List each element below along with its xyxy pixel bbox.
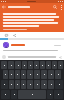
button[interactable]: Period [47, 90, 53, 99]
button[interactable]: More options [58, 3, 64, 11]
button[interactable]: Shift [1, 80, 8, 89]
button[interactable] [46, 61, 51, 69]
button[interactable] [27, 70, 33, 79]
button[interactable]: Backspace [55, 80, 63, 89]
button[interactable] [21, 70, 26, 79]
button[interactable] [27, 80, 33, 89]
button[interactable] [41, 70, 47, 79]
button[interactable] [8, 61, 14, 69]
button[interactable]: Share [11, 32, 17, 38]
button[interactable]: Space [18, 90, 46, 99]
button[interactable] [15, 70, 20, 79]
button[interactable] [15, 61, 21, 69]
button[interactable] [9, 70, 14, 79]
button[interactable]: Comments [3, 32, 9, 38]
other: Your avatar [2, 55, 6, 59]
button[interactable] [41, 80, 47, 89]
button[interactable] [34, 61, 39, 69]
button[interactable] [21, 80, 26, 89]
button[interactable]: Back [0, 3, 8, 11]
button[interactable]: Enter [54, 90, 63, 99]
button[interactable] [15, 80, 20, 89]
button[interactable] [58, 61, 63, 69]
button[interactable]: Your avatar [0, 53, 64, 60]
button[interactable] [34, 80, 40, 89]
button[interactable] [22, 61, 27, 69]
button[interactable]: Send [58, 55, 62, 59]
button[interactable]: Emoji [11, 90, 17, 99]
button[interactable] [28, 61, 33, 69]
button[interactable] [48, 70, 54, 79]
button[interactable]: Symbols [1, 90, 10, 99]
button[interactable]: Search [51, 3, 58, 11]
button[interactable] [34, 70, 40, 79]
button[interactable] [55, 70, 61, 79]
button[interactable]: User avatar [3, 42, 9, 48]
button[interactable] [52, 61, 57, 69]
button[interactable] [40, 61, 45, 69]
button[interactable] [9, 80, 14, 89]
button[interactable] [48, 80, 54, 89]
button[interactable] [1, 61, 7, 69]
button[interactable] [3, 70, 8, 79]
